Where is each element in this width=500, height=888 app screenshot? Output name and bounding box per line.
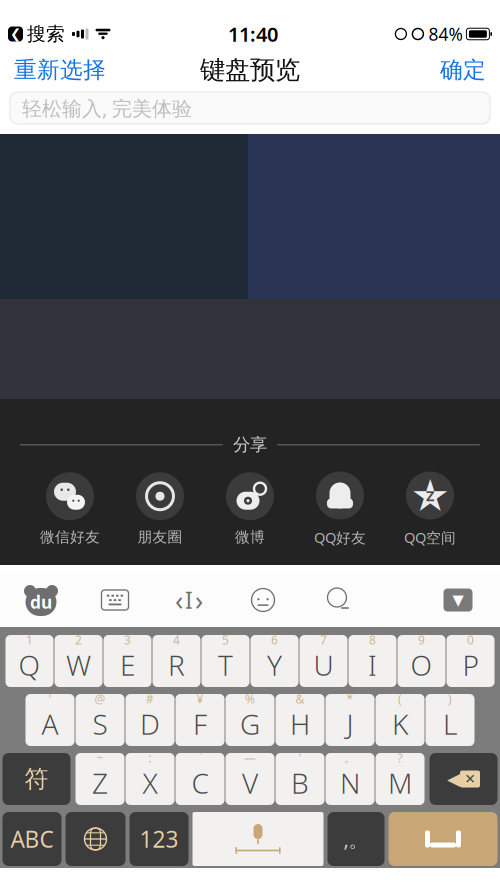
staticText: Z [426, 486, 434, 505]
button[interactable]: ) [425, 694, 474, 746]
button[interactable]: ? [375, 753, 424, 805]
staticText: 。 [344, 750, 356, 765]
staticText: R [168, 646, 185, 684]
staticText: ,。 [343, 826, 368, 852]
button[interactable]: 9 [397, 635, 445, 687]
staticText: D [140, 705, 160, 743]
button[interactable]: 移动光标 [152, 577, 226, 623]
button[interactable]: 2 [54, 635, 102, 687]
button[interactable]: 朋友圈 [115, 472, 205, 546]
staticText: ◀ [447, 769, 460, 789]
button[interactable]: ' [275, 753, 324, 805]
staticText: J [346, 705, 353, 743]
staticText: @ [94, 691, 105, 707]
button[interactable]: ★ [385, 471, 475, 547]
staticText: & [295, 691, 304, 707]
staticText: ‹ [175, 582, 183, 618]
staticText: 0 [467, 632, 474, 648]
staticText: QQ好友 [314, 527, 366, 547]
staticText: ( [398, 691, 402, 707]
staticText: U [313, 646, 333, 684]
staticText: N [340, 764, 360, 802]
staticText: B [291, 764, 309, 802]
staticText: 朋友圈 [137, 528, 182, 546]
button[interactable]: 换行 [388, 812, 497, 866]
button[interactable]: 符 [2, 753, 70, 805]
staticText: : [148, 750, 151, 766]
staticText: L [443, 705, 457, 743]
button[interactable]: & [275, 694, 324, 746]
staticText: K [392, 705, 408, 743]
staticText: E [120, 646, 135, 684]
button[interactable]: 。 [325, 753, 374, 805]
staticText: ' [298, 750, 301, 766]
staticText: 9 [418, 632, 425, 648]
button[interactable]: 语音输入 [192, 812, 323, 866]
button[interactable]: 1 [5, 635, 53, 687]
button[interactable]: 切换语言 [65, 812, 125, 866]
button[interactable]: 4 [152, 635, 200, 687]
button[interactable]: ABC [2, 812, 61, 866]
staticText: 1 [26, 632, 33, 648]
button[interactable]: ` [175, 753, 224, 805]
staticText: ❮ [10, 26, 21, 41]
button[interactable]: # [125, 694, 174, 746]
staticText: 84% [428, 22, 462, 45]
staticText: 微博 [235, 528, 265, 546]
staticText: ' [48, 691, 51, 707]
button[interactable]: 8 [348, 635, 396, 687]
staticText: I [185, 585, 193, 615]
staticText: H [290, 705, 310, 743]
button[interactable]: 6 [250, 635, 298, 687]
button[interactable]: 123 [129, 812, 188, 866]
staticText: 3 [124, 632, 131, 648]
button[interactable]: ' [25, 694, 74, 746]
button[interactable]: QQ好友 [295, 471, 385, 547]
button[interactable]: % [225, 694, 274, 746]
button[interactable]: ¥ [175, 694, 224, 746]
button[interactable]: ( [375, 694, 424, 746]
staticText: 6 [271, 632, 278, 648]
staticText: 8 [369, 632, 376, 648]
button[interactable]: 输入法 [4, 577, 78, 623]
staticText: › [195, 582, 203, 618]
button[interactable]: ~ [75, 753, 124, 805]
staticText: 11:40 [228, 21, 278, 47]
staticText: du [30, 590, 52, 613]
staticText: Z [92, 764, 108, 802]
button[interactable]: ,。 [327, 812, 384, 866]
button[interactable]: 重新选择 [0, 47, 120, 93]
button[interactable]: 搜索 [300, 577, 374, 623]
staticText: 2 [75, 632, 82, 648]
button[interactable]: 3 [103, 635, 151, 687]
staticText: M [388, 764, 412, 802]
button[interactable]: * [325, 694, 374, 746]
staticText: 分享 [233, 434, 267, 455]
staticText: 键盘预览 [200, 54, 300, 85]
button[interactable]: — [225, 753, 274, 805]
staticText: ★ [410, 470, 449, 520]
button[interactable]: 表情 [226, 577, 300, 623]
staticText: ? [397, 750, 402, 766]
staticText: ABC [10, 824, 53, 854]
staticText: 4 [173, 632, 180, 648]
button[interactable]: 7 [299, 635, 347, 687]
button[interactable]: 微博 [205, 472, 295, 546]
staticText: Y [267, 646, 282, 684]
staticText: F [193, 705, 207, 743]
button[interactable]: : [125, 753, 174, 805]
staticText: ✕ [464, 771, 475, 786]
button[interactable]: 确定 [426, 47, 500, 93]
button[interactable]: 收起键盘 [430, 577, 486, 623]
staticText: ` [198, 750, 201, 766]
button[interactable]: 5 [201, 635, 249, 687]
staticText: Q [18, 646, 40, 684]
staticText: 确定 [440, 56, 486, 84]
button[interactable]: 0 [446, 635, 494, 687]
button[interactable]: @ [75, 694, 124, 746]
button[interactable]: 切换键盘 [78, 577, 152, 623]
staticText: ) [448, 691, 452, 707]
staticText: 123 [139, 824, 178, 854]
button[interactable]: 删除 [429, 753, 497, 805]
button[interactable]: 微信好友 [25, 472, 115, 546]
